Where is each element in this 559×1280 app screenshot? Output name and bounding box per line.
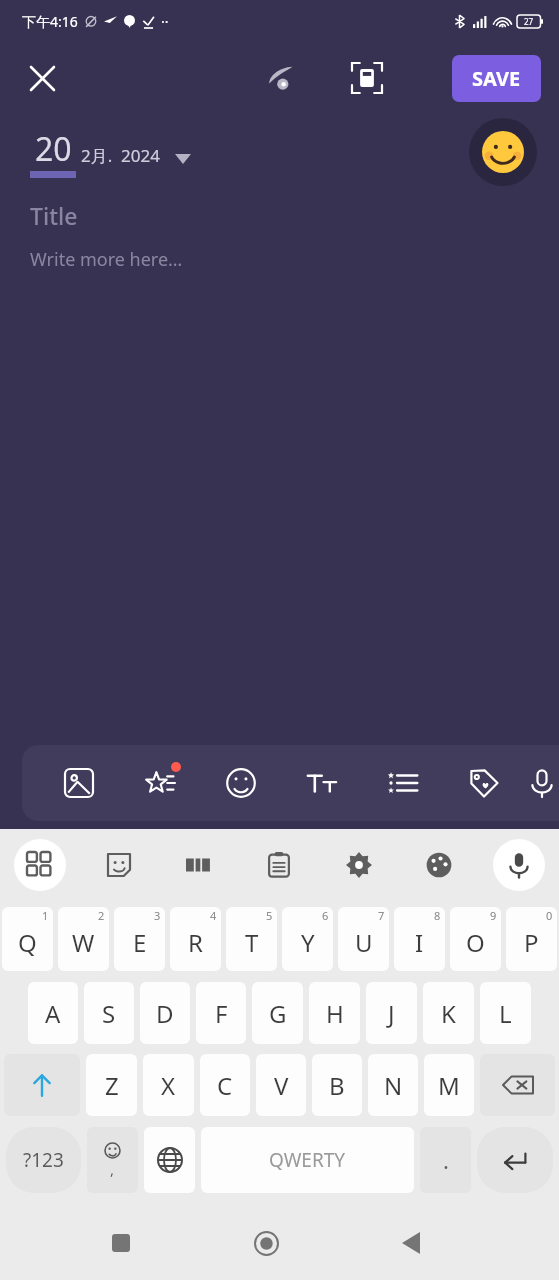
staticText: 2月. 2024 [81,144,161,167]
button[interactable]: Home [238,1215,294,1271]
staticText: H [326,997,344,1030]
button[interactable]: P [506,907,557,971]
button[interactable]: S [84,982,134,1044]
button[interactable]: Checklist [362,745,443,821]
staticText: 7 [378,908,385,923]
button[interactable]: W [58,907,109,971]
button[interactable]: Y [282,907,333,971]
staticText: E [133,926,147,959]
staticText: 6 [322,908,329,923]
button[interactable]: Z [86,1054,137,1116]
button[interactable]: Keyboard tool [159,829,239,901]
button[interactable]: Keyboard tool [239,829,319,901]
button[interactable]: Tags [443,745,524,821]
staticText: W [72,926,95,959]
button[interactable]: Q [2,907,53,971]
button[interactable]: Keyboard tool [0,829,79,901]
button[interactable]: Reading mode [256,54,304,102]
staticText: Write more here… [30,247,183,272]
button[interactable]: Templates [119,745,200,821]
button[interactable]: Emoji [87,1127,138,1193]
staticText: J [388,997,395,1030]
button[interactable]: U [338,907,389,971]
staticText: 下午4:16 [22,12,78,31]
button[interactable]: Language [144,1127,195,1193]
button[interactable]: Keyboard tool [479,829,559,901]
button[interactable]: R [170,907,221,971]
button[interactable]: Back [383,1215,439,1271]
button[interactable]: E [114,907,165,971]
button[interactable]: G [252,982,303,1044]
staticText: L [499,997,512,1030]
button[interactable]: Enter [477,1127,553,1193]
staticText: G [269,997,287,1030]
staticText: A [45,997,61,1030]
staticText: 3 [154,908,161,923]
button[interactable]: Keyboard tool [79,829,159,901]
button[interactable]: Text format [281,745,362,821]
button[interactable]: V [256,1054,306,1116]
staticText: ?123 [23,1147,64,1173]
staticText: I [415,926,424,959]
staticText: . [443,1145,449,1175]
staticText: Y [301,926,315,959]
staticText: O [466,926,485,959]
button[interactable]: C [200,1054,250,1116]
staticText: 20 [35,127,72,171]
staticText: T [245,926,259,959]
button[interactable]: Mood [469,118,537,186]
staticText: V [274,1069,289,1102]
staticText: 9 [490,908,497,923]
staticText: N [384,1069,403,1102]
button[interactable]: J [366,982,417,1044]
button[interactable]: F [196,982,246,1044]
staticText: Title [30,200,78,231]
staticText: K [441,997,456,1030]
staticText: 0 [546,908,553,923]
staticText: S [102,997,116,1030]
button[interactable]: K [423,982,474,1044]
button[interactable]: B [312,1054,362,1116]
staticText: M [438,1069,460,1102]
button[interactable]: X [143,1054,194,1116]
staticText: D [156,997,174,1030]
staticText: X [161,1069,176,1102]
button[interactable]: 20 [30,127,191,178]
button[interactable]: D [140,982,190,1044]
staticText: C [217,1069,233,1102]
staticText: Q [18,926,37,959]
staticText: 8 [434,908,441,923]
button[interactable]: T [226,907,277,971]
button[interactable]: Keyboard tool [399,829,479,901]
staticText: QWERTY [269,1147,346,1173]
button[interactable]: H [309,982,360,1044]
staticText: B [329,1069,345,1102]
button[interactable]: A [28,982,78,1044]
button[interactable]: SAVE [452,55,541,102]
button[interactable]: ?123 [6,1127,81,1193]
staticText: 1 [42,908,49,923]
staticText: 27 [524,16,534,27]
button[interactable]: Add image [38,745,119,821]
staticText: U [355,926,373,959]
button[interactable]: L [480,982,531,1044]
button[interactable]: Recent apps [93,1215,149,1271]
button[interactable]: Mood [200,745,281,821]
staticText: , [110,1159,115,1179]
button[interactable]: Backspace [480,1054,555,1116]
button[interactable]: N [368,1054,418,1116]
button[interactable]: O [450,907,501,971]
button[interactable]: M [424,1054,474,1116]
button[interactable]: Close [18,54,66,102]
staticText: SAVE [472,65,521,92]
button[interactable]: Shift [4,1054,80,1116]
staticText: R [188,926,203,959]
button[interactable]: Voice [524,745,559,821]
staticText: 2 [98,908,105,923]
staticText: P [524,926,539,959]
button[interactable]: Scan document [343,54,391,102]
button[interactable]: I [394,907,445,971]
button[interactable]: Keyboard tool [319,829,399,901]
button[interactable]: . [420,1127,471,1193]
button[interactable]: Space [201,1127,414,1193]
